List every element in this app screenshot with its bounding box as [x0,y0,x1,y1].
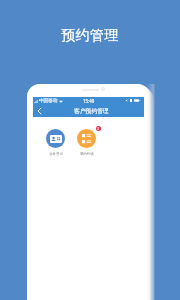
button[interactable]: Back [33,104,46,117]
staticText: 中国移动 [39,98,58,104]
staticText: 预约管理 [61,27,119,45]
button[interactable]: 业务登记 [40,129,71,156]
staticText: 3 [97,126,100,131]
button[interactable]: 3 [71,129,102,156]
staticText: 业务登记 [49,152,63,156]
staticText: 15:49 [83,98,95,104]
staticText: 预约列表 [80,152,94,156]
staticText: 客户预约管理 [74,107,109,114]
